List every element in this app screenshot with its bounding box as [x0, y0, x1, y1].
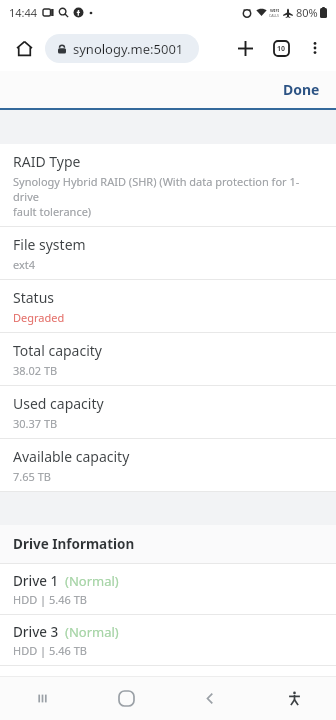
staticText: 80%	[296, 5, 318, 20]
button[interactable]: Tabs	[265, 32, 297, 64]
staticText: Degraded	[13, 310, 65, 325]
staticText: CALLS	[269, 13, 280, 18]
staticText: Done	[283, 80, 320, 99]
staticText: File system	[13, 235, 86, 254]
button[interactable]: Recent apps	[0, 677, 84, 720]
staticText: Synology Hybrid RAID (SHR) (With data pr…	[13, 174, 323, 204]
staticText: 14:44	[9, 5, 38, 20]
button[interactable]: More options	[299, 32, 331, 64]
staticText: synology.me:5001	[73, 40, 184, 58]
button[interactable]: Back	[168, 677, 252, 720]
staticText: 7.65 TB	[13, 469, 51, 484]
staticText: WIFI	[270, 8, 280, 13]
staticText: Drive 3	[13, 623, 59, 641]
button[interactable]: Accessibility	[252, 677, 336, 720]
button[interactable]: Available capacity	[0, 439, 336, 491]
staticText: (Normal)	[65, 623, 119, 641]
staticText: 10	[277, 44, 286, 54]
staticText: Used capacity	[13, 394, 104, 413]
button[interactable]: Drive 3	[0, 615, 336, 665]
staticText: HDD | 5.46 TB	[13, 592, 87, 607]
staticText: RAID Type	[13, 152, 81, 171]
button[interactable]: Total capacity	[0, 333, 336, 385]
staticText: Status	[13, 288, 55, 307]
button[interactable]: Status	[0, 280, 336, 332]
staticText: fault tolerance)	[13, 204, 92, 219]
staticText: 38.02 TB	[13, 363, 58, 378]
button[interactable]: RAID Type	[0, 144, 336, 226]
staticText: Available capacity	[13, 447, 130, 466]
staticText: Drive Information	[13, 535, 135, 553]
staticText: Drive 1	[13, 572, 59, 590]
button[interactable]: synology.me:5001	[45, 34, 199, 63]
button[interactable]: Drive 1	[0, 564, 336, 614]
staticText: HDD | 5.46 TB	[13, 643, 87, 658]
button[interactable]: Home	[9, 33, 39, 63]
staticText: 30.37 TB	[13, 416, 58, 431]
button[interactable]: Home	[84, 677, 168, 720]
staticText: (Normal)	[65, 572, 119, 590]
button[interactable]: Used capacity	[0, 386, 336, 438]
button[interactable]: Done	[267, 74, 336, 105]
button[interactable]: New tab	[229, 32, 261, 64]
button[interactable]: File system	[0, 227, 336, 279]
staticText: Total capacity	[13, 341, 102, 360]
staticText: ext4	[13, 257, 36, 272]
